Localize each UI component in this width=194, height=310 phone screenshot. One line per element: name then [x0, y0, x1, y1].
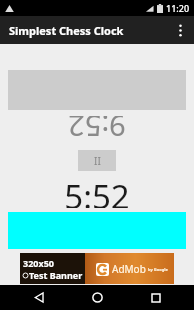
staticText: 5:52: [64, 174, 130, 208]
staticText: 11:20: [166, 2, 190, 14]
staticText: 320x50: [23, 257, 54, 269]
staticText: II: [94, 154, 101, 168]
button[interactable]: Advertisement: [20, 253, 174, 284]
staticText: Test Banner: [29, 269, 83, 281]
staticText: 9:52: [68, 116, 126, 146]
staticText: Simplest Chess Clock: [9, 23, 124, 38]
button[interactable]: Home: [77, 285, 117, 310]
button[interactable]: Back: [19, 285, 59, 310]
staticText: by Google: [148, 267, 168, 272]
button[interactable]: More options: [166, 16, 194, 44]
staticText: AdMob: [112, 262, 146, 276]
button[interactable]: Pause: [78, 150, 116, 171]
button[interactable]: Recent apps: [136, 285, 176, 310]
